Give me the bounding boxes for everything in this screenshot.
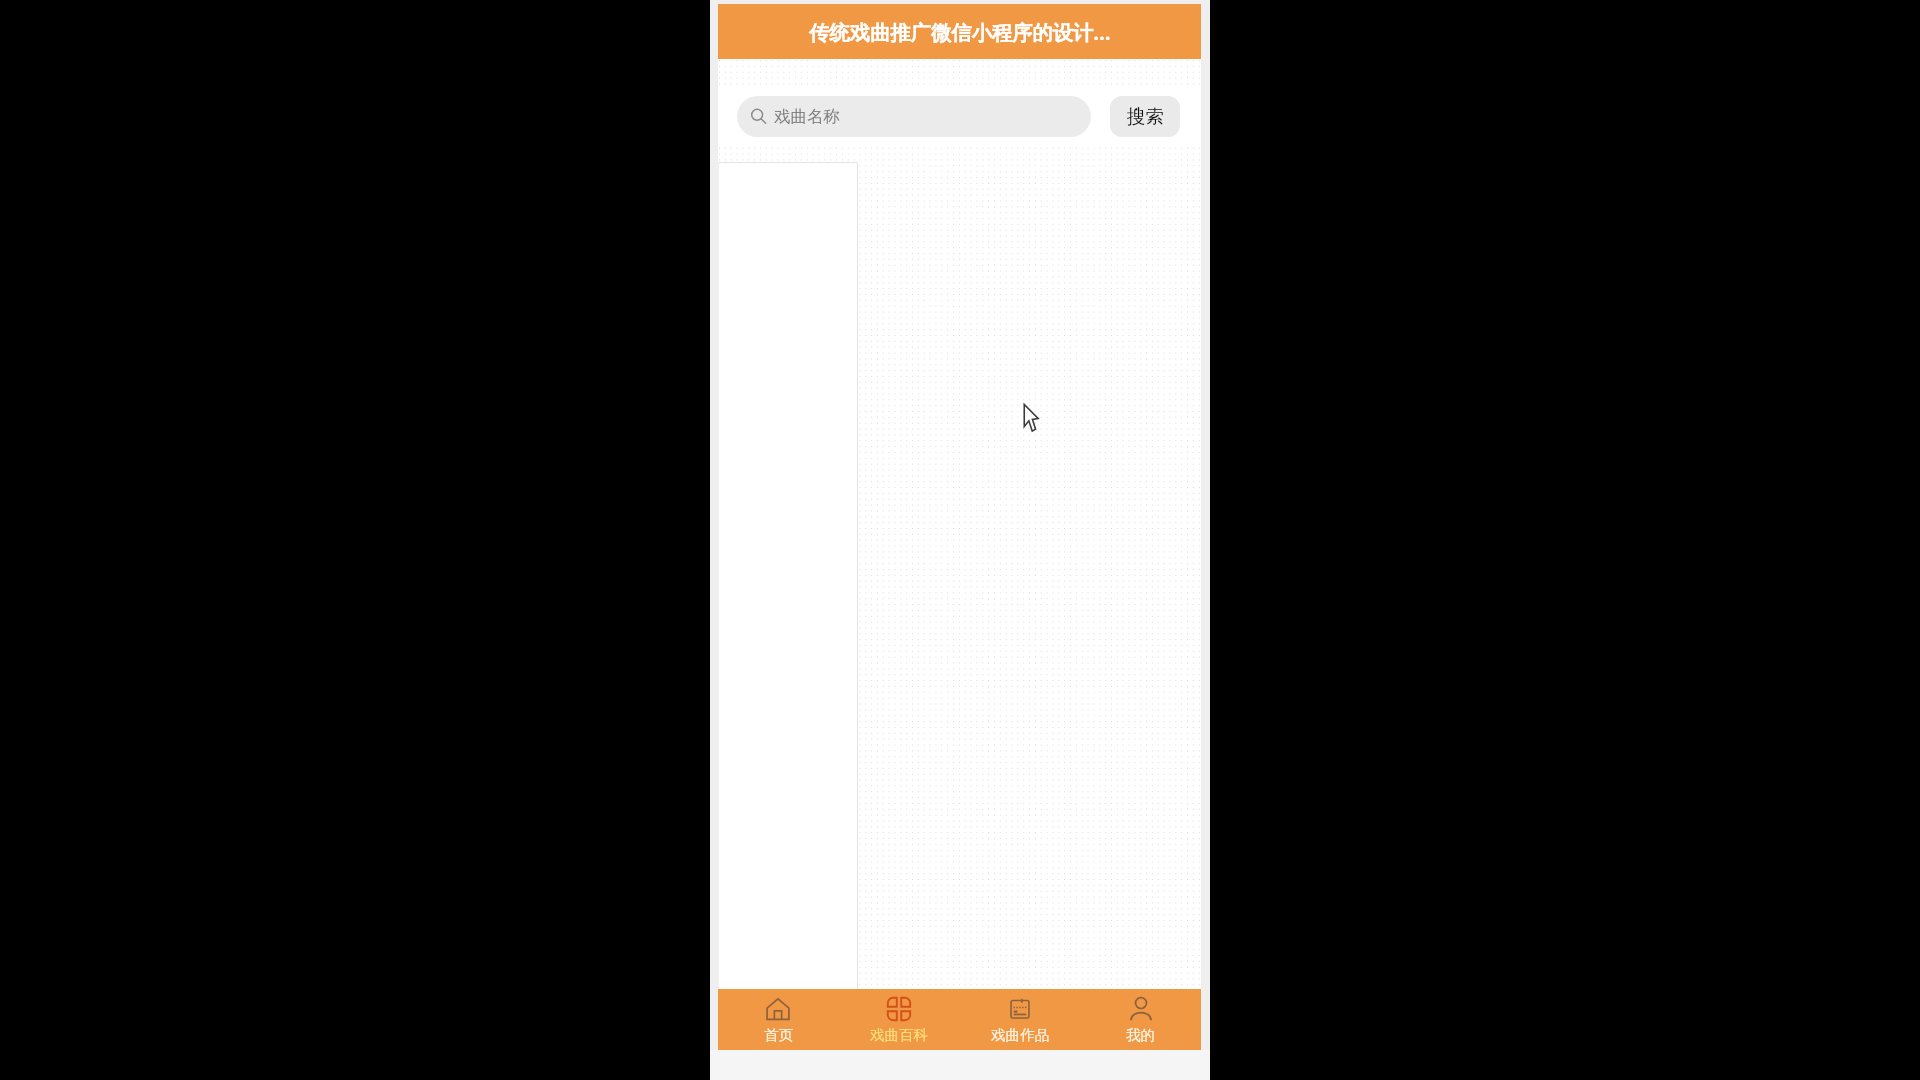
button[interactable]: 传统戏曲推广微信小程序的设计… [718, 4, 1201, 59]
staticText: 戏曲名称 [774, 106, 840, 127]
staticText: 传统戏曲推广微信小程序的设计… [809, 18, 1111, 46]
button[interactable]: 戏曲名称 [737, 96, 1091, 137]
button[interactable]: 戏曲百科 [838, 989, 959, 1050]
button[interactable]: 戏曲作品 [959, 989, 1080, 1050]
staticText: 搜索 [1127, 105, 1164, 128]
button[interactable]: 搜索 [1110, 96, 1180, 137]
staticText: 首页 [764, 1026, 793, 1044]
button[interactable]: 我的 [1080, 989, 1201, 1050]
button[interactable]: 首页 [718, 989, 838, 1050]
staticText: 我的 [1126, 1026, 1155, 1044]
staticText: 戏曲作品 [991, 1026, 1049, 1044]
staticText: 戏曲百科 [870, 1026, 928, 1044]
